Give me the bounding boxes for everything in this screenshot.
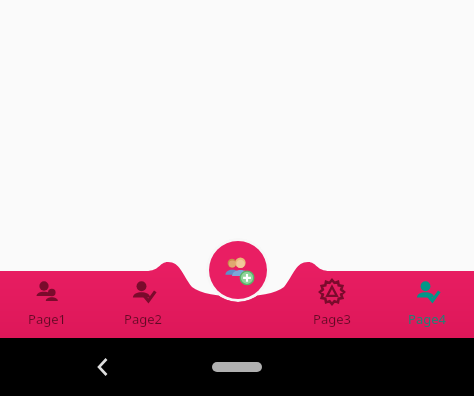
button[interactable]: Page1	[1, 277, 93, 331]
button[interactable]: Page3	[286, 277, 378, 331]
staticText: Page2	[97, 310, 189, 328]
button[interactable]: Back	[83, 347, 123, 387]
button[interactable]: Page4	[381, 277, 473, 331]
staticText: Page1	[1, 310, 93, 328]
staticText: Page4	[381, 310, 473, 328]
button[interactable]: Add people	[206, 238, 270, 302]
button[interactable]: Page2	[97, 277, 189, 331]
staticText: Page3	[286, 310, 378, 328]
button[interactable]: Home	[212, 362, 262, 372]
